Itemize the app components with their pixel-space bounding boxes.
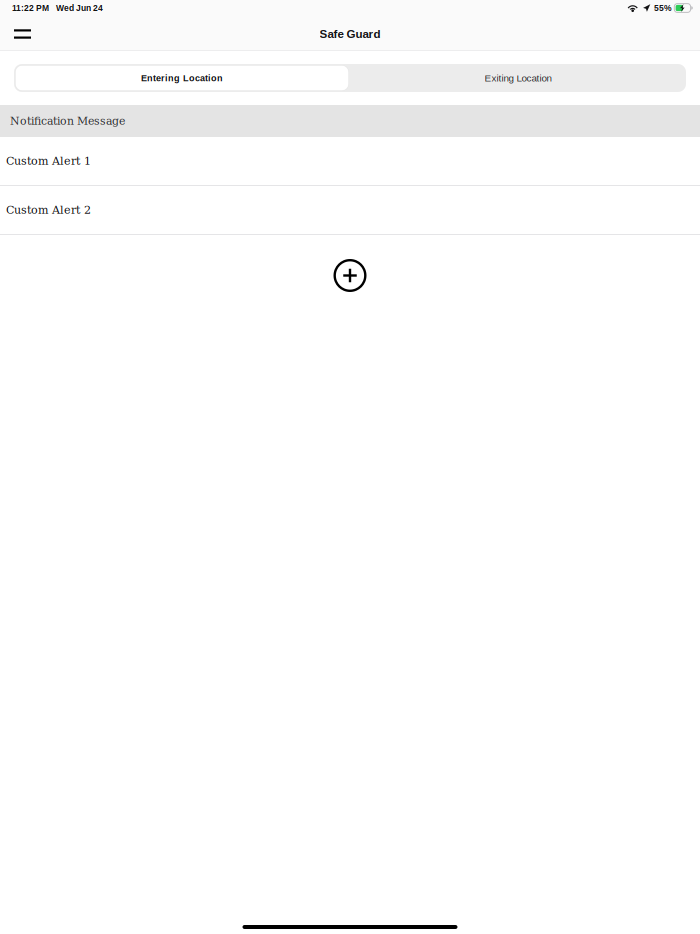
button[interactable]: Entering Location: [14, 64, 350, 92]
staticText: Entering Location: [141, 73, 223, 83]
staticText: Safe Guard: [319, 27, 380, 40]
staticText: 11:22 PM: [12, 3, 49, 13]
staticText: 55%: [654, 3, 672, 13]
staticText: Custom Alert 2: [6, 204, 91, 216]
staticText: Wed Jun 24: [56, 3, 103, 13]
staticText: Exiting Location: [484, 72, 551, 83]
staticText: Notification Message: [10, 115, 125, 127]
staticText: Custom Alert 1: [6, 155, 91, 167]
button[interactable]: Add alert: [333, 235, 366, 300]
button[interactable]: Custom Alert 2: [0, 186, 700, 234]
button[interactable]: Custom Alert 1: [0, 137, 700, 185]
button[interactable]: Exiting Location: [350, 64, 686, 92]
button[interactable]: Menu: [6, 20, 39, 48]
